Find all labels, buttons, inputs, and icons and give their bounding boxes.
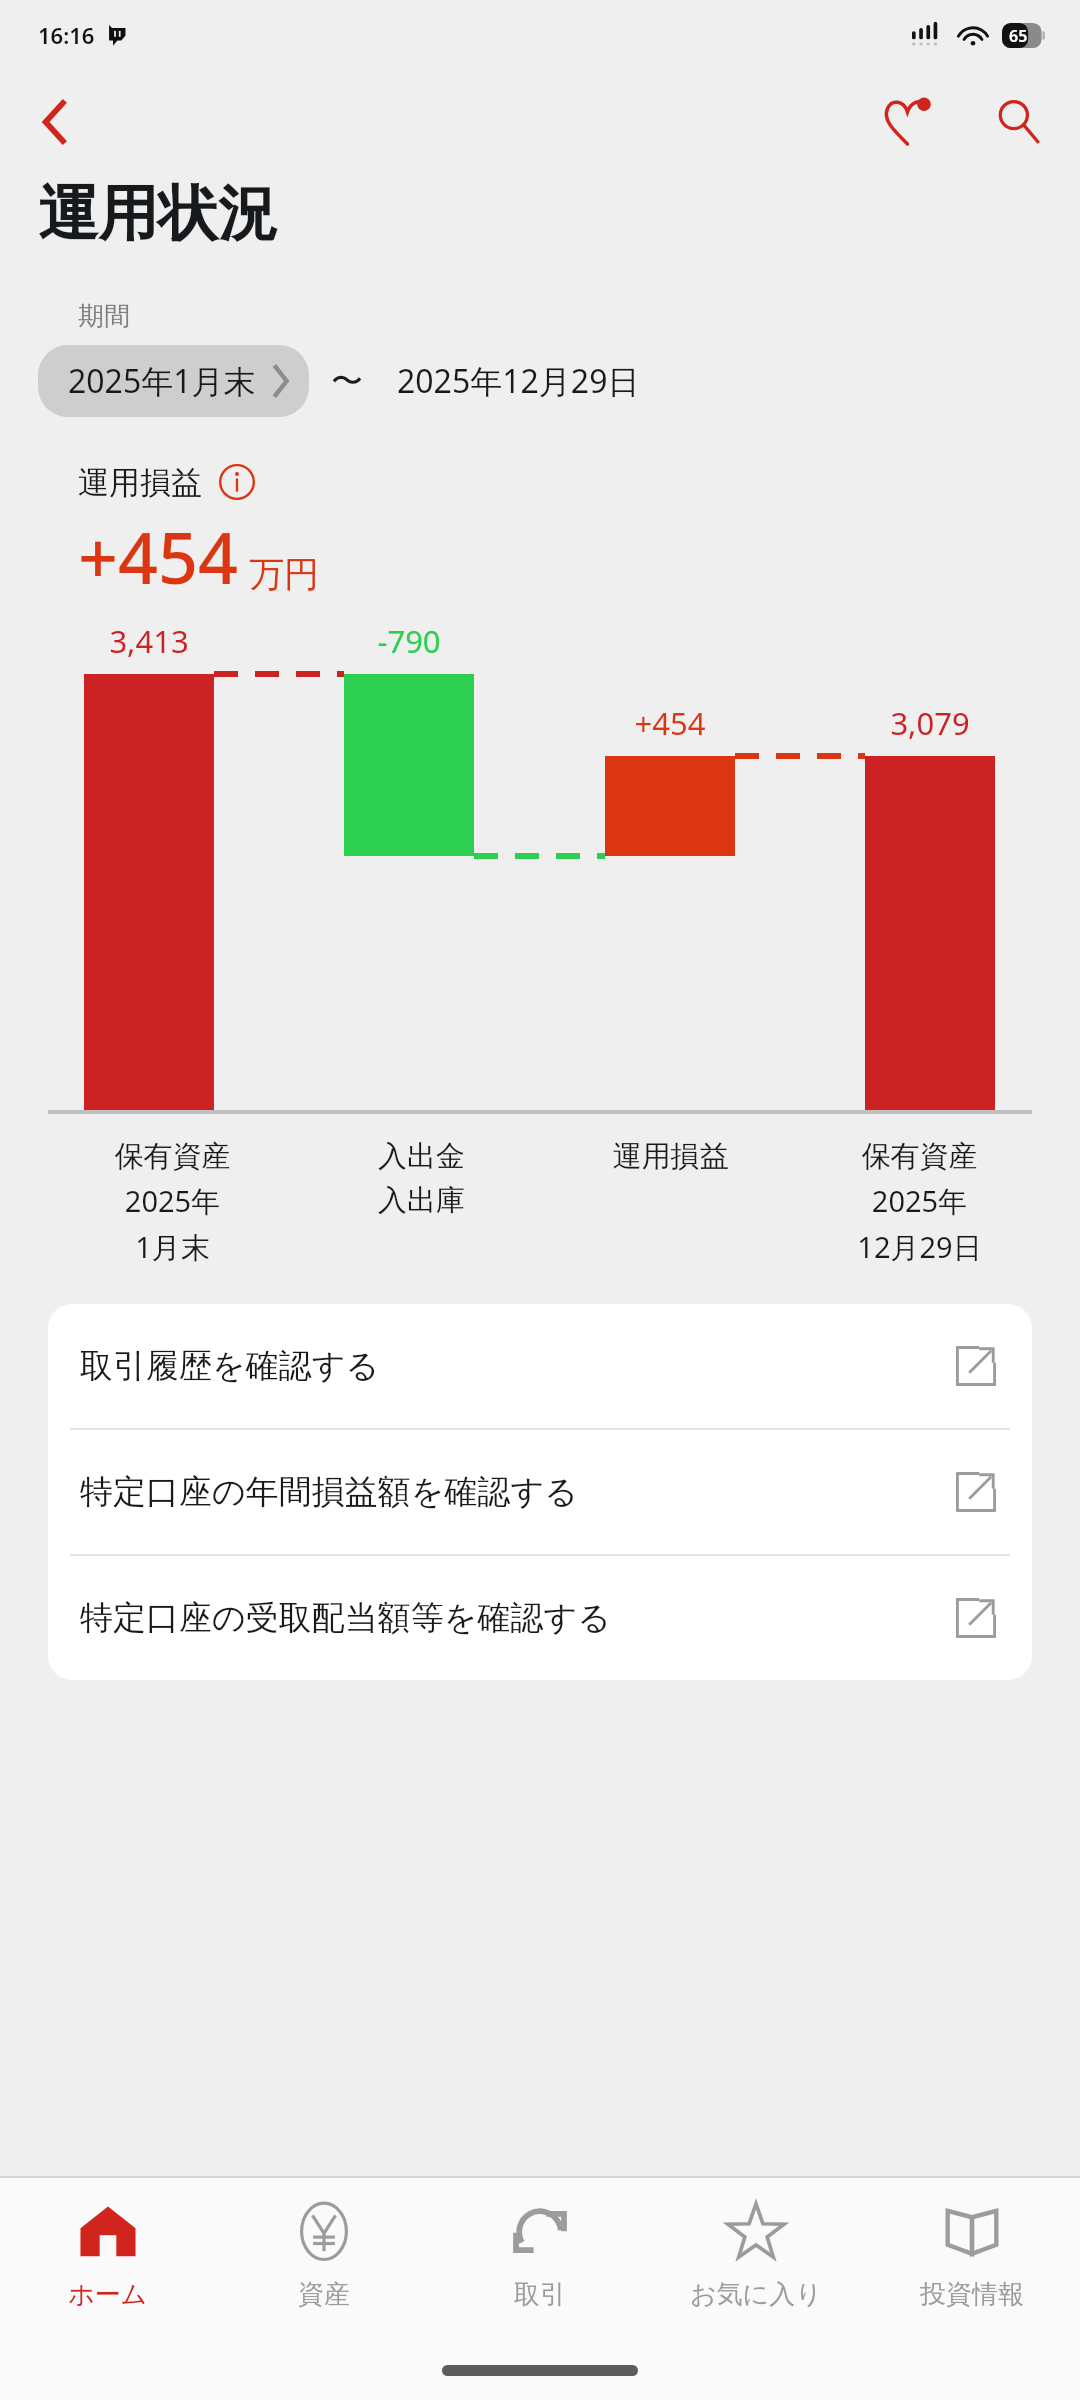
staticText: 3,079 [830, 702, 1030, 744]
staticText: -790 [309, 620, 509, 662]
staticText: 運用損益 [546, 1138, 795, 1175]
staticText: 65 [1009, 25, 1028, 47]
staticText: 投資情報 [920, 2278, 1024, 2311]
staticText: 運用損益 [78, 463, 202, 502]
staticText: 保有資産 2025年 12月29日 [795, 1138, 1044, 1266]
button[interactable]: 2025年1月末 [38, 345, 309, 417]
button[interactable]: Favorites [862, 76, 954, 168]
staticText: 取引履歴を確認する [80, 1345, 380, 1387]
staticText: 万円 [249, 552, 319, 596]
button[interactable]: Home [0, 2194, 216, 2317]
other: Favorites [724, 2200, 788, 2264]
other: Home [76, 2200, 140, 2264]
staticText: +454 [570, 702, 770, 744]
button[interactable]: 特定口座の年間損益額を確認する [48, 1430, 1032, 1554]
staticText: 運用状況 [38, 176, 278, 252]
other: Info [940, 2200, 1004, 2264]
staticText: 入出金 入出庫 [297, 1138, 546, 1218]
staticText: お気に入り [690, 2278, 822, 2311]
staticText: 期間 [78, 300, 130, 333]
staticText: 3,413 [49, 620, 249, 662]
other: Trade [508, 2200, 572, 2264]
button[interactable]: Back [16, 82, 96, 162]
staticText: +454 [78, 509, 239, 604]
staticText: ホーム [68, 2278, 148, 2311]
button[interactable]: Assets [216, 2194, 432, 2317]
button[interactable]: Search [972, 76, 1064, 168]
staticText: 特定口座の受取配当額等を確認する [80, 1597, 612, 1639]
button[interactable]: 特定口座の受取配当額等を確認する [48, 1556, 1032, 1680]
button[interactable]: Info [214, 459, 260, 505]
staticText: 取引 [514, 2278, 566, 2311]
button[interactable]: Trade [432, 2194, 648, 2317]
staticText: 2025年1月末 [68, 359, 256, 403]
staticText: 2025年12月29日 [397, 359, 640, 403]
button[interactable]: Info [864, 2194, 1080, 2317]
staticText: 16:16 [38, 20, 95, 50]
staticText: 資産 [298, 2278, 350, 2311]
staticText: 特定口座の年間損益額を確認する [80, 1471, 579, 1513]
staticText: 保有資産 2025年 1月末 [48, 1138, 297, 1266]
button[interactable]: Favorites [648, 2194, 864, 2317]
other: Assets [292, 2200, 356, 2264]
staticText: 〜 [331, 361, 363, 401]
button[interactable]: 取引履歴を確認する [48, 1304, 1032, 1428]
